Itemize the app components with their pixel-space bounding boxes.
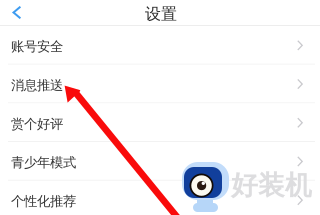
staticText: 设置: [145, 4, 177, 24]
button[interactable]: 消息推送: [0, 65, 320, 103]
button[interactable]: 青少年模式: [0, 142, 320, 181]
button[interactable]: Back: [0, 0, 34, 25]
button[interactable]: 个性化推荐: [0, 181, 320, 215]
staticText: 账号安全: [11, 38, 63, 55]
staticText: 好装机: [231, 169, 312, 202]
staticText: 个性化推荐: [11, 193, 76, 210]
staticText: 赏个好评: [11, 116, 63, 132]
staticText: 青少年模式: [11, 154, 76, 171]
button[interactable]: 账号安全: [0, 26, 320, 65]
staticText: 消息推送: [11, 77, 63, 93]
button[interactable]: 赏个好评: [0, 103, 320, 142]
